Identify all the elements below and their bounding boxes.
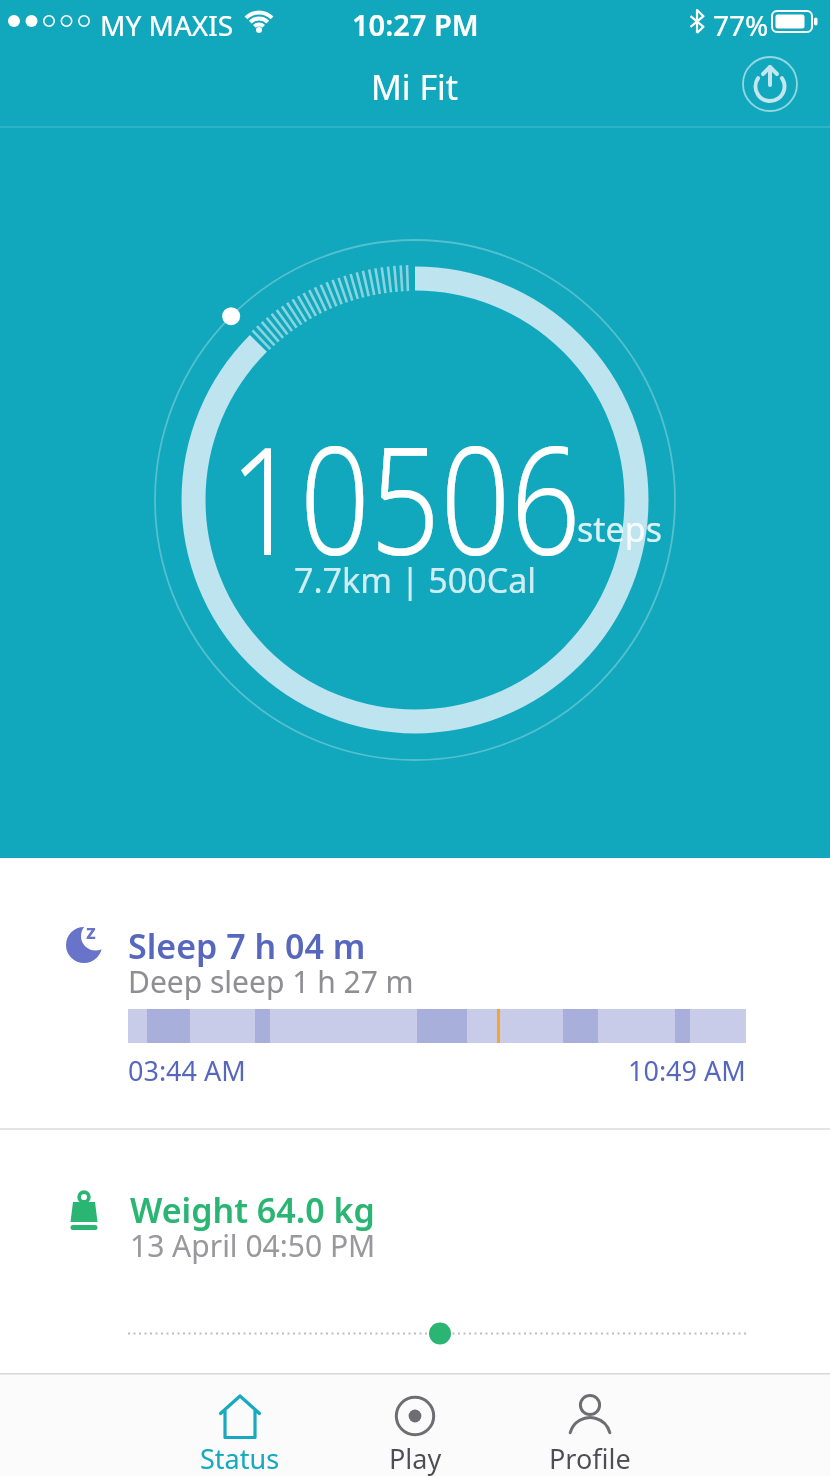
staticText: z: [86, 918, 96, 945]
staticText: MY MAXIS: [100, 6, 234, 44]
staticText: 10:27 PM: [352, 5, 479, 44]
staticText: Profile: [549, 1440, 631, 1476]
staticText: 10506: [230, 395, 581, 599]
button[interactable]: Status: [165, 1373, 315, 1476]
staticText: Status: [200, 1440, 280, 1476]
staticText: Play: [389, 1440, 442, 1476]
staticText: Mi Fit: [371, 64, 459, 110]
staticText: Deep sleep 1 h 27 m: [128, 961, 414, 1002]
staticText: Weight 64.0 kg: [130, 1187, 375, 1233]
staticText: 13 April 04:50 PM: [130, 1225, 376, 1266]
staticText: 7.7km | 500Cal: [294, 557, 537, 603]
button[interactable]: [742, 56, 798, 112]
button[interactable]: Profile: [515, 1373, 665, 1476]
staticText: 77%: [713, 6, 769, 44]
staticText: Sleep 7 h 04 m: [128, 923, 366, 969]
button[interactable]: z: [0, 858, 830, 1128]
staticText: steps: [577, 506, 662, 552]
button[interactable]: Weight 64.0 kg: [0, 1130, 830, 1373]
button[interactable]: Play: [340, 1373, 490, 1476]
staticText: 03:44 AM: [128, 1052, 246, 1089]
staticText: 10:49 AM: [628, 1052, 746, 1089]
